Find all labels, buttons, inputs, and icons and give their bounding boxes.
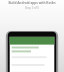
staticText: Build Android apps with Kotlin — [8, 1, 56, 5]
staticText: Step 3 of 5 — [25, 6, 39, 10]
